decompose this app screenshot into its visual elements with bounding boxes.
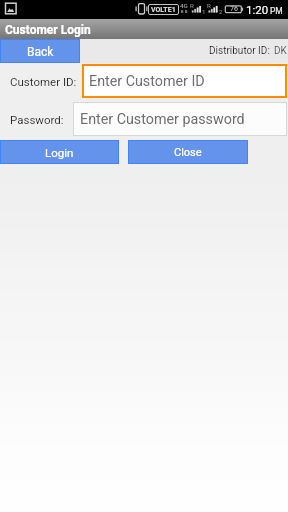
button[interactable]: Close [128,140,248,164]
staticText: Login [45,146,74,159]
staticText: 1:20 [246,3,269,16]
staticText: 76 [230,5,238,13]
button[interactable]: Login [0,140,119,164]
staticText: PM [270,6,283,16]
button[interactable]: Enter Customer password [73,102,287,136]
staticText: 1 [202,8,206,15]
staticText: Distributor ID: [209,45,270,57]
staticText: VOLTE1 [151,6,176,14]
staticText: R [207,2,211,9]
staticText: Close [174,146,202,159]
staticText: DK [274,45,287,57]
staticText: Customer Login [5,23,91,37]
staticText: Enter Customer password [80,111,245,128]
staticText: 4G [180,2,188,9]
staticText: Back [27,45,54,59]
staticText: Enter Customer ID [89,73,205,90]
staticText: Password: [10,113,64,126]
staticText: R [190,2,194,9]
staticText: 2 [219,8,223,15]
staticText: Customer ID: [10,75,77,88]
button[interactable]: Back [0,39,80,63]
button[interactable]: Enter Customer ID [82,64,287,98]
